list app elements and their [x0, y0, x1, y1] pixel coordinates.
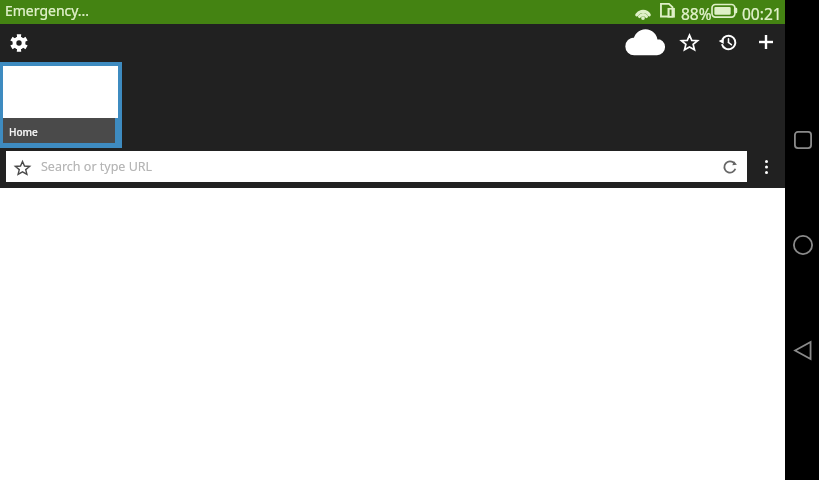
- button[interactable]: Reload: [715, 152, 745, 182]
- button[interactable]: History: [709, 24, 747, 60]
- staticText: Emergency...: [5, 1, 90, 20]
- button[interactable]: Settings: [7, 31, 31, 55]
- staticText: Home: [9, 125, 38, 139]
- button[interactable]: Back: [787, 333, 819, 367]
- staticText: Search or type URL: [41, 158, 153, 175]
- button[interactable]: Search or type URL: [6, 151, 747, 182]
- button[interactable]: Home: [3, 66, 118, 143]
- button[interactable]: Sync: [622, 24, 668, 60]
- button[interactable]: Bookmarks: [670, 24, 708, 60]
- button[interactable]: Recent apps: [787, 123, 819, 157]
- staticText: 00:21: [742, 3, 782, 24]
- staticText: 88%: [681, 3, 712, 24]
- button[interactable]: Home: [787, 228, 819, 262]
- button[interactable]: New tab: [747, 24, 785, 60]
- button[interactable]: More options: [747, 151, 785, 182]
